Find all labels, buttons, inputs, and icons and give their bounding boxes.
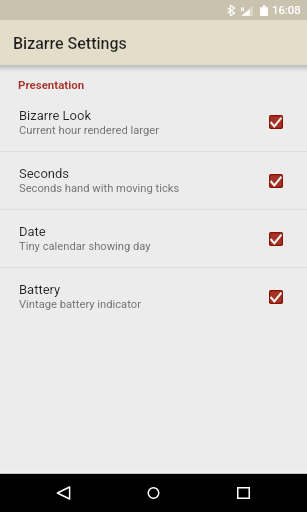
button[interactable]: Seconds [0, 152, 307, 209]
button[interactable]: Recent apps [198, 474, 288, 512]
button[interactable]: Bizarre Look [0, 93, 307, 151]
staticText: Battery [19, 282, 61, 297]
other: Enabled [269, 232, 283, 246]
button[interactable]: Home [108, 474, 198, 512]
staticText: Seconds hand with moving ticks [19, 182, 180, 195]
staticText: Tiny calendar showing day [19, 240, 151, 253]
staticText: Date [19, 224, 46, 239]
staticText: 16:08 [272, 3, 301, 16]
staticText: Bizarre Look [19, 108, 92, 123]
button[interactable]: Back [19, 474, 108, 512]
staticText: Bizarre Settings [13, 34, 127, 53]
other: Enabled [269, 174, 283, 188]
other: Enabled [269, 290, 283, 304]
button[interactable]: Date [0, 210, 307, 267]
staticText: Current hour rendered larger [19, 124, 159, 137]
staticText: Vintage battery indicator [19, 298, 141, 311]
other: Enabled [269, 115, 283, 129]
staticText: Presentation [18, 78, 85, 91]
button[interactable]: Battery [0, 268, 307, 325]
staticText: Seconds [19, 166, 70, 181]
